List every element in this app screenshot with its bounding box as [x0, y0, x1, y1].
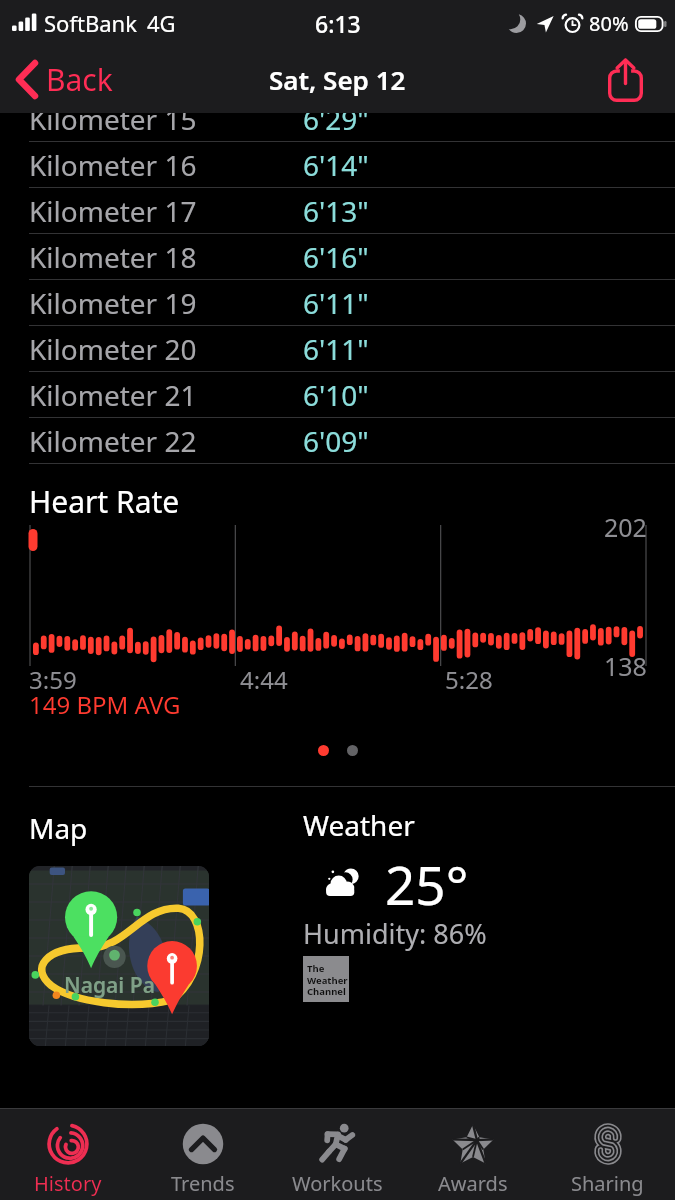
staticText: Kilometer 21 — [29, 376, 197, 414]
button[interactable]: Kilometer 22 — [0, 418, 675, 463]
button[interactable]: Kilometer 21 — [0, 372, 675, 417]
staticText: Weather — [303, 806, 415, 844]
staticText: 4G — [147, 8, 176, 38]
staticText: 6'09" — [303, 422, 369, 460]
staticText: Trends — [171, 1170, 235, 1197]
button[interactable]: Sharing — [540, 1109, 675, 1200]
button[interactable]: Share — [590, 50, 675, 110]
staticText: Kilometer 20 — [29, 330, 197, 368]
staticText: 6'29" — [303, 100, 369, 138]
staticText: 80% — [589, 10, 629, 37]
staticText: 6:13 — [315, 8, 361, 39]
button[interactable]: Awards — [405, 1109, 540, 1200]
staticText: 25° — [385, 848, 469, 920]
staticText: Map — [29, 809, 88, 847]
staticText: 3:59 — [29, 663, 77, 696]
button[interactable]: Kilometer 16 — [0, 142, 675, 187]
staticText: 6'10" — [303, 376, 369, 414]
staticText: Sharing — [571, 1170, 644, 1197]
staticText: Kilometer 22 — [29, 422, 197, 460]
button[interactable]: Kilometer 20 — [0, 326, 675, 371]
staticText: History — [34, 1170, 102, 1197]
staticText: Kilometer 15 — [29, 100, 197, 138]
staticText: 6'14" — [303, 146, 369, 184]
staticText: 6'11" — [303, 284, 369, 322]
button[interactable]: Back — [0, 51, 127, 108]
button[interactable]: Kilometer 15 — [0, 96, 675, 141]
staticText: SoftBank — [44, 8, 137, 38]
staticText: 202 — [604, 510, 647, 544]
button[interactable]: Workouts — [270, 1109, 405, 1200]
button[interactable]: Kilometer 18 — [0, 234, 675, 279]
button[interactable]: Map — [29, 866, 209, 1046]
staticText: Humidity: 86% — [303, 915, 487, 952]
button[interactable]: Kilometer 17 — [0, 188, 675, 233]
staticText: Kilometer 19 — [29, 284, 197, 322]
button[interactable]: History — [0, 1109, 135, 1200]
staticText: Nagai Pa — [64, 971, 155, 1000]
staticText: 138 — [604, 649, 647, 683]
staticText: Kilometer 16 — [29, 146, 197, 184]
staticText: Kilometer 17 — [29, 192, 197, 230]
staticText: 6'11" — [303, 330, 369, 368]
staticText: Heart Rate — [29, 481, 180, 522]
staticText: 4:44 — [240, 663, 288, 696]
staticText: Back — [46, 59, 113, 100]
staticText: 149 BPM AVG — [29, 688, 181, 721]
staticText: Sat, Sep 12 — [269, 62, 406, 97]
staticText: 6'13" — [303, 192, 369, 230]
staticText: Awards — [438, 1170, 508, 1197]
staticText: Kilometer 18 — [29, 238, 197, 276]
button[interactable]: Trends — [135, 1109, 270, 1200]
staticText: Workouts — [292, 1170, 383, 1197]
button[interactable]: Kilometer 19 — [0, 280, 675, 325]
staticText: 6'16" — [303, 238, 369, 276]
staticText: The Weather Channel — [307, 962, 348, 997]
staticText: 5:28 — [445, 663, 493, 696]
